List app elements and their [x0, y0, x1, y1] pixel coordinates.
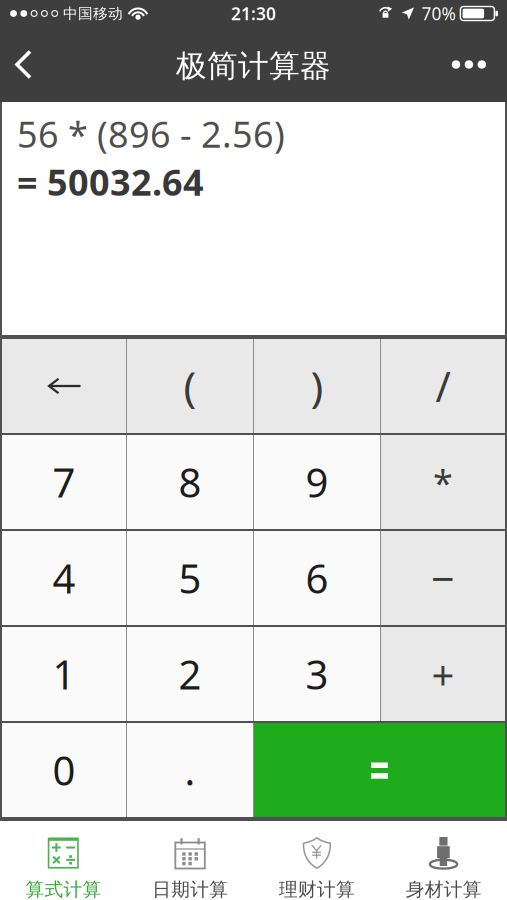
- button[interactable]: /: [381, 339, 505, 433]
- button[interactable]: 日期计算: [127, 821, 254, 900]
- staticText: /: [435, 359, 450, 413]
- button[interactable]: 2: [127, 627, 253, 721]
- button[interactable]: 5: [127, 531, 253, 625]
- button[interactable]: 7: [2, 435, 126, 529]
- button[interactable]: 9: [254, 435, 380, 529]
- button[interactable]: 身材计算: [380, 821, 507, 900]
- staticText: 身材计算: [406, 878, 482, 900]
- button[interactable]: 3: [254, 627, 380, 721]
- button[interactable]: 1: [2, 627, 126, 721]
- staticText: = 50032.64: [17, 158, 204, 206]
- button[interactable]: .: [127, 723, 253, 817]
- staticText: 8: [178, 455, 201, 508]
- staticText: 9: [305, 455, 328, 508]
- button[interactable]: 理财计算: [253, 821, 380, 900]
- staticText: 7: [52, 455, 75, 508]
- button[interactable]: 算式计算: [0, 821, 127, 900]
- button[interactable]: +: [381, 627, 505, 721]
- staticText: 2: [178, 647, 201, 700]
- button[interactable]: −: [381, 531, 505, 625]
- staticText: .: [184, 743, 195, 796]
- staticText: 56 * (896 - 2.56): [17, 110, 285, 158]
- button[interactable]: 8: [127, 435, 253, 529]
- staticText: 0: [52, 743, 75, 796]
- staticText: 理财计算: [279, 878, 355, 900]
- button[interactable]: [2, 339, 126, 433]
- button[interactable]: [452, 60, 486, 69]
- staticText: 70%: [421, 2, 455, 25]
- button[interactable]: (: [127, 339, 253, 433]
- staticText: (: [183, 358, 196, 414]
- staticText: ): [310, 358, 323, 414]
- staticText: 5: [178, 551, 201, 604]
- staticText: 1: [52, 647, 75, 700]
- staticText: 6: [305, 551, 328, 604]
- staticText: −: [431, 551, 455, 605]
- staticText: 4: [52, 551, 75, 604]
- button[interactable]: 6: [254, 531, 380, 625]
- staticText: *: [433, 458, 453, 506]
- staticText: 算式计算: [25, 878, 101, 900]
- staticText: 极简计算器: [176, 47, 331, 85]
- staticText: 21:30: [231, 2, 276, 25]
- button[interactable]: *: [381, 435, 505, 529]
- button[interactable]: [254, 723, 505, 817]
- staticText: 3: [305, 647, 328, 700]
- button[interactable]: 4: [2, 531, 126, 625]
- staticText: +: [431, 647, 454, 700]
- staticText: 日期计算: [152, 878, 228, 900]
- button[interactable]: ): [254, 339, 380, 433]
- button[interactable]: [14, 49, 34, 79]
- staticText: 中国移动: [63, 4, 123, 22]
- button[interactable]: 0: [2, 723, 126, 817]
